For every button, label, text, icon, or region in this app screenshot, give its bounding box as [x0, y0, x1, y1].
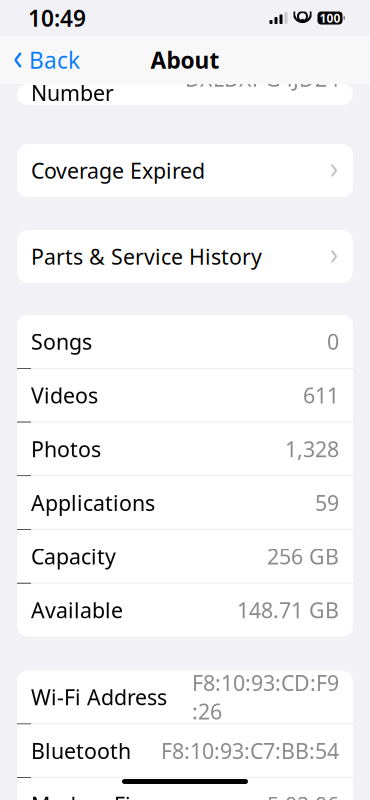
staticText: Applications — [31, 488, 155, 517]
staticText: Parts & Service History — [31, 242, 262, 271]
button[interactable]: Back — [0, 38, 90, 82]
staticText: Coverage Expired — [31, 156, 205, 185]
staticText: F8:10:93:CD:F9:26 — [192, 669, 339, 725]
staticText: DXLDXPG4JD24 — [185, 64, 339, 93]
staticText: Modem Firmware — [31, 790, 209, 800]
button[interactable]: Parts & Service History — [17, 230, 353, 283]
staticText: Videos — [31, 381, 98, 409]
staticText: 10:49 — [28, 3, 86, 33]
staticText: 256 GB — [267, 542, 339, 570]
staticText: About — [150, 45, 219, 75]
staticText: 1,328 — [285, 435, 339, 463]
staticText: Capacity — [31, 542, 116, 570]
staticText: 100 — [319, 10, 340, 26]
staticText: 148.71 GB — [237, 596, 339, 624]
staticText: Available — [31, 596, 123, 624]
staticText: F8:10:93:C7:BB:54 — [161, 736, 339, 765]
button[interactable]: Coverage Expired — [17, 144, 353, 197]
staticText: Back — [29, 45, 80, 75]
staticText: Bluetooth — [31, 736, 131, 765]
staticText: Wi-Fi Address — [31, 683, 167, 711]
staticText: Songs — [31, 327, 92, 356]
staticText: 0 — [327, 327, 339, 356]
staticText: 5.02.06 — [267, 790, 339, 800]
staticText: 59 — [315, 488, 339, 517]
staticText: Photos — [31, 435, 101, 463]
staticText: 611 — [303, 381, 339, 409]
staticText: Serial Number — [31, 50, 114, 107]
